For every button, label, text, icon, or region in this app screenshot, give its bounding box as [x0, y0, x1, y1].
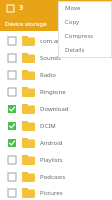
button[interactable]: Checked [8, 139, 16, 147]
staticText: Pictures [40, 189, 63, 197]
staticText: Copy [65, 18, 80, 26]
staticText: Details [65, 46, 85, 54]
button[interactable]: Unchecked [8, 71, 16, 79]
button[interactable]: Checked [0, 117, 112, 134]
button[interactable]: Unchecked [8, 156, 16, 164]
button[interactable]: Checked [8, 122, 16, 130]
staticText: 3 [19, 3, 24, 13]
button[interactable]: Select all [4, 2, 17, 15]
button[interactable]: Unchecked [8, 88, 16, 96]
button[interactable]: Details [58, 43, 112, 57]
staticText: com.an [40, 37, 61, 45]
button[interactable]: Unchecked [0, 49, 112, 66]
button[interactable]: Unchecked [0, 168, 112, 185]
button[interactable]: Unchecked [0, 185, 112, 200]
button[interactable]: Checked [0, 100, 112, 117]
button[interactable]: Unchecked [0, 83, 112, 100]
button[interactable]: Checked [8, 105, 16, 113]
staticText: DCIM [40, 122, 56, 130]
button[interactable]: Unchecked [8, 189, 16, 197]
button[interactable]: Unchecked [0, 32, 112, 49]
button[interactable]: Unchecked [0, 151, 112, 168]
staticText: Compress [65, 32, 94, 40]
staticText: Device storage [5, 20, 47, 28]
staticText: Sounds [40, 54, 61, 62]
staticText: Radio [40, 71, 56, 79]
button[interactable]: Copy [58, 15, 112, 29]
staticText: Ringtone [40, 88, 66, 96]
button[interactable]: Unchecked [8, 37, 16, 45]
staticText: Download [40, 105, 69, 113]
button[interactable]: Unchecked [8, 173, 16, 181]
button[interactable]: Move [58, 1, 112, 15]
button[interactable]: Compress [58, 29, 112, 43]
button[interactable]: Unchecked [8, 54, 16, 62]
staticText: Android [40, 139, 63, 147]
staticText: Podcasts [40, 173, 66, 181]
staticText: Playlists [40, 156, 63, 164]
staticText: Move [65, 4, 81, 12]
button[interactable]: Unchecked [0, 66, 112, 83]
button[interactable]: Checked [0, 134, 112, 151]
